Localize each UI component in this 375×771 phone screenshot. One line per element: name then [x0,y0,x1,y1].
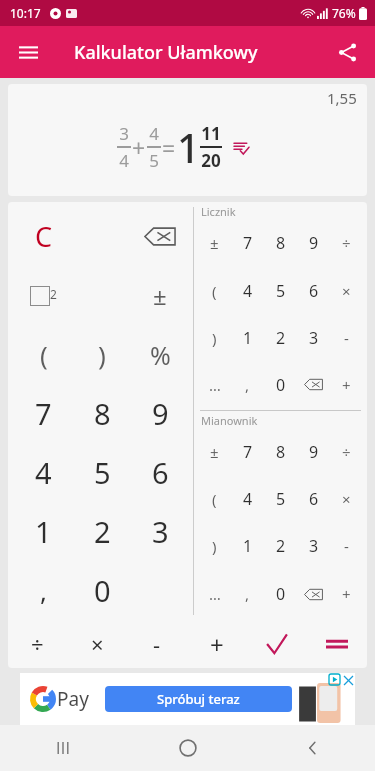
button[interactable]: ( [198,267,231,314]
staticText: 10:17 [10,5,41,21]
button[interactable]: Pay [20,673,355,725]
button[interactable]: Back [250,725,375,771]
staticText: … [209,375,221,395]
button[interactable]: 1 [231,314,264,361]
staticText: ÷ [31,629,44,659]
button[interactable]: - [330,314,363,361]
button[interactable]: 7 [231,428,264,475]
staticText: = [162,132,176,163]
button[interactable]: + [330,361,363,408]
button[interactable]: ) [198,522,231,570]
button[interactable]: + [187,620,247,668]
button[interactable]: 7 [231,219,264,267]
button[interactable]: 5 [264,267,297,314]
button[interactable]: - [330,522,363,570]
button[interactable]: - [127,620,187,668]
button[interactable]: Square [14,266,73,325]
staticText: 4 [149,122,159,145]
button[interactable]: 6 [297,267,330,314]
button[interactable]: … [198,570,231,618]
button[interactable]: ( [198,475,231,522]
button[interactable]: Spróbuj teraz [105,686,292,712]
button[interactable]: , [231,570,264,618]
button[interactable]: , [14,561,73,620]
staticText: % [150,338,171,372]
staticText: + [132,132,146,163]
button[interactable]: 5 [73,443,131,502]
staticText: ÷ [342,442,351,462]
button[interactable]: Confirm [247,620,307,668]
staticText: + [342,584,351,604]
button[interactable]: ÷ [8,620,67,668]
button[interactable]: Equals [307,620,367,668]
button[interactable]: Home [125,725,250,771]
staticText: ± [210,442,219,462]
button[interactable]: 4 [231,475,264,522]
button[interactable]: × [330,267,363,314]
button[interactable]: Share [327,32,367,72]
button[interactable]: 9 [297,219,330,267]
button[interactable]: 6 [131,443,189,502]
button[interactable]: Recents [0,725,125,771]
staticText: 2 [94,512,111,551]
button[interactable]: 8 [73,384,131,443]
button[interactable]: 1 [231,522,264,570]
button[interactable]: 2 [264,522,297,570]
button[interactable]: Close ad [342,674,354,686]
button[interactable]: 3 [297,522,330,570]
button[interactable]: Menu [8,32,48,72]
staticText: Licznik [201,204,236,219]
button[interactable]: ) [198,314,231,361]
staticText: Mianownik [201,413,258,428]
button[interactable]: ± [131,266,189,325]
staticText: , [245,375,250,395]
button[interactable]: Result options [230,136,252,158]
button[interactable]: × [67,620,127,668]
staticText: 1,55 [327,88,357,108]
button[interactable]: 5 [264,475,297,522]
button[interactable]: × [330,475,363,522]
staticText: 6 [309,280,319,302]
staticText: 1 [177,120,200,174]
staticText: 4 [119,149,129,172]
button[interactable]: 7 [14,384,73,443]
button[interactable]: 2 [73,502,131,561]
button[interactable]: 8 [264,428,297,475]
button[interactable]: ÷ [330,428,363,475]
button[interactable]: 3 [131,502,189,561]
button[interactable]: 1 [14,502,73,561]
button[interactable]: 8 [264,219,297,267]
button[interactable]: % [131,325,189,384]
staticText: Spróbuj teraz [157,690,240,708]
button[interactable]: 0 [264,361,297,408]
button[interactable]: Backspace [297,570,330,618]
button[interactable]: 2 [264,314,297,361]
button[interactable]: , [231,361,264,408]
staticText: 4 [243,488,253,510]
button[interactable]: 0 [73,561,131,620]
staticText: … [209,584,221,604]
button[interactable]: 9 [297,428,330,475]
staticText: 3 [152,512,169,551]
button[interactable]: ÷ [330,219,363,267]
button[interactable]: 0 [264,570,297,618]
button[interactable]: Backspace [297,361,330,408]
button[interactable]: 4 [231,267,264,314]
button[interactable]: … [198,361,231,408]
staticText: 4 [243,280,253,302]
button[interactable]: + [330,570,363,618]
button[interactable]: ± [198,219,231,267]
staticText: ÷ [342,233,351,253]
button[interactable]: 6 [297,475,330,522]
staticText: 7 [35,394,52,433]
staticText: 2 [276,327,286,349]
staticText: 3 [309,327,319,349]
button[interactable]: 9 [131,384,189,443]
button[interactable]: C [14,206,73,266]
button[interactable]: ± [198,428,231,475]
button[interactable]: 4 [14,443,73,502]
button[interactable]: 3 [297,314,330,361]
button[interactable]: ( [14,325,73,384]
button[interactable]: ) [73,325,131,384]
button[interactable]: Backspace [131,206,189,266]
